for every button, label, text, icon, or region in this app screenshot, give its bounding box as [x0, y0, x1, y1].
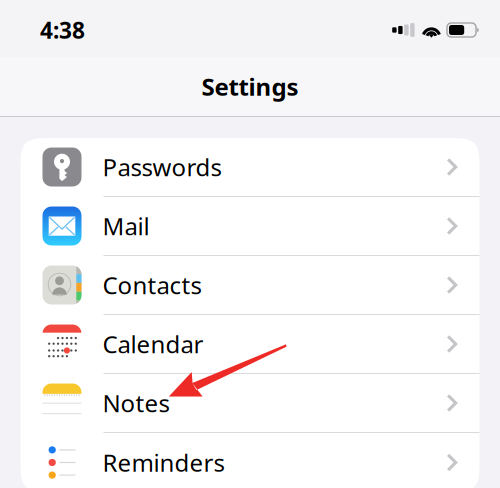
staticText: Contacts — [102, 269, 201, 301]
button[interactable]: Notes — [20, 374, 479, 433]
staticText: 4:38 — [40, 15, 85, 45]
staticText: Reminders — [102, 447, 224, 478]
button[interactable]: Passwords — [20, 138, 479, 197]
button[interactable]: Settings — [0, 57, 500, 116]
staticText: Mail — [102, 210, 149, 242]
button[interactable]: Contacts — [20, 256, 479, 315]
button[interactable]: Mail — [20, 197, 479, 256]
staticText: Passwords — [102, 151, 221, 183]
staticText: Notes — [102, 387, 169, 419]
button[interactable]: Reminders — [20, 433, 479, 488]
button[interactable]: Calendar — [20, 315, 479, 374]
staticText: Calendar — [102, 328, 203, 360]
staticText: Settings — [201, 71, 298, 102]
